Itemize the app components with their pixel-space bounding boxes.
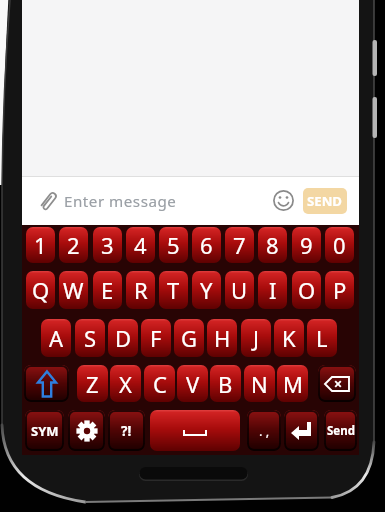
button[interactable]: W [59,271,88,309]
staticText: 4 [134,230,147,260]
button[interactable]: SEND [303,188,347,214]
staticText: V [186,369,200,399]
button[interactable]: N [244,365,275,402]
button[interactable]: 6 [192,227,221,263]
button[interactable]: L [307,319,337,357]
button[interactable]: 5 [159,227,188,263]
button[interactable] [273,190,294,211]
button[interactable]: T [159,271,188,309]
staticText: F [150,323,162,353]
button[interactable]: V [177,365,208,402]
button[interactable]: H [207,319,237,357]
button[interactable]: K [274,319,304,357]
staticText: M [283,369,303,399]
staticText: 9 [300,230,313,260]
staticText: Z [86,369,99,399]
button[interactable]: G [174,319,204,357]
button[interactable]: A [41,319,71,357]
staticText: K [282,323,296,353]
staticText: G [181,323,198,353]
button[interactable]: 3 [93,227,122,263]
button[interactable]: I [258,271,287,309]
staticText: Q [32,275,50,305]
button[interactable]: B [210,365,241,402]
button[interactable]: . , [247,410,281,451]
staticText: T [167,275,180,305]
button[interactable] [318,365,356,402]
button[interactable]: 0 [325,227,354,263]
button[interactable]: Send [324,410,357,451]
staticText: I [269,275,277,305]
button[interactable]: 8 [258,227,287,263]
staticText: C [153,369,167,399]
staticText: U [231,275,248,305]
button[interactable]: 1 [26,227,55,263]
button[interactable]: E [93,271,122,309]
button[interactable]: X [110,365,141,402]
staticText: 8 [266,230,279,260]
button[interactable]: 4 [126,227,155,263]
staticText: 3 [101,230,114,260]
button[interactable]: 2 [59,227,88,263]
button[interactable]: 7 [225,227,254,263]
button[interactable]: Z [77,365,108,402]
button[interactable]: J [241,319,271,357]
button[interactable]: Q [26,271,55,309]
button[interactable] [284,410,319,451]
staticText: R [134,275,148,305]
staticText: E [101,275,114,305]
staticText: 6 [200,230,213,260]
staticText: 7 [233,230,246,260]
staticText: Y [200,275,213,305]
button[interactable]: U [225,271,254,309]
button[interactable]: R [126,271,155,309]
staticText: J [253,323,260,353]
staticText: S [84,323,97,353]
button[interactable]: 9 [292,227,321,263]
staticText: A [49,323,64,353]
staticText: O [298,275,316,305]
button[interactable]: P [325,271,354,309]
staticText: H [214,323,231,353]
button[interactable]: S [75,319,105,357]
staticText: 2 [67,230,80,260]
button[interactable]: C [144,365,175,402]
button[interactable]: M [277,365,308,402]
staticText: 0 [333,230,346,260]
button[interactable] [68,410,105,451]
button[interactable]: D [108,319,138,357]
staticText: 5 [167,230,180,260]
button[interactable] [24,365,69,402]
staticText: X [119,369,132,399]
button[interactable] [150,410,240,451]
staticText: Enter message [64,191,177,212]
button[interactable] [22,177,359,226]
button[interactable]: SYM [25,410,64,451]
staticText: P [333,275,347,305]
staticText: SYM [31,422,59,440]
staticText: ?! [121,422,132,440]
staticText: SEND [307,192,343,210]
button[interactable]: O [292,271,321,309]
staticText: B [218,369,233,399]
staticText: D [115,323,132,353]
button[interactable]: F [141,319,171,357]
staticText: L [316,323,328,353]
staticText: . , [259,422,270,440]
staticText: 1 [34,230,47,260]
staticText: Send [327,423,355,439]
button[interactable]: ?! [108,410,145,451]
staticText: W [63,275,84,305]
staticText: N [251,369,268,399]
button[interactable]: Y [192,271,221,309]
